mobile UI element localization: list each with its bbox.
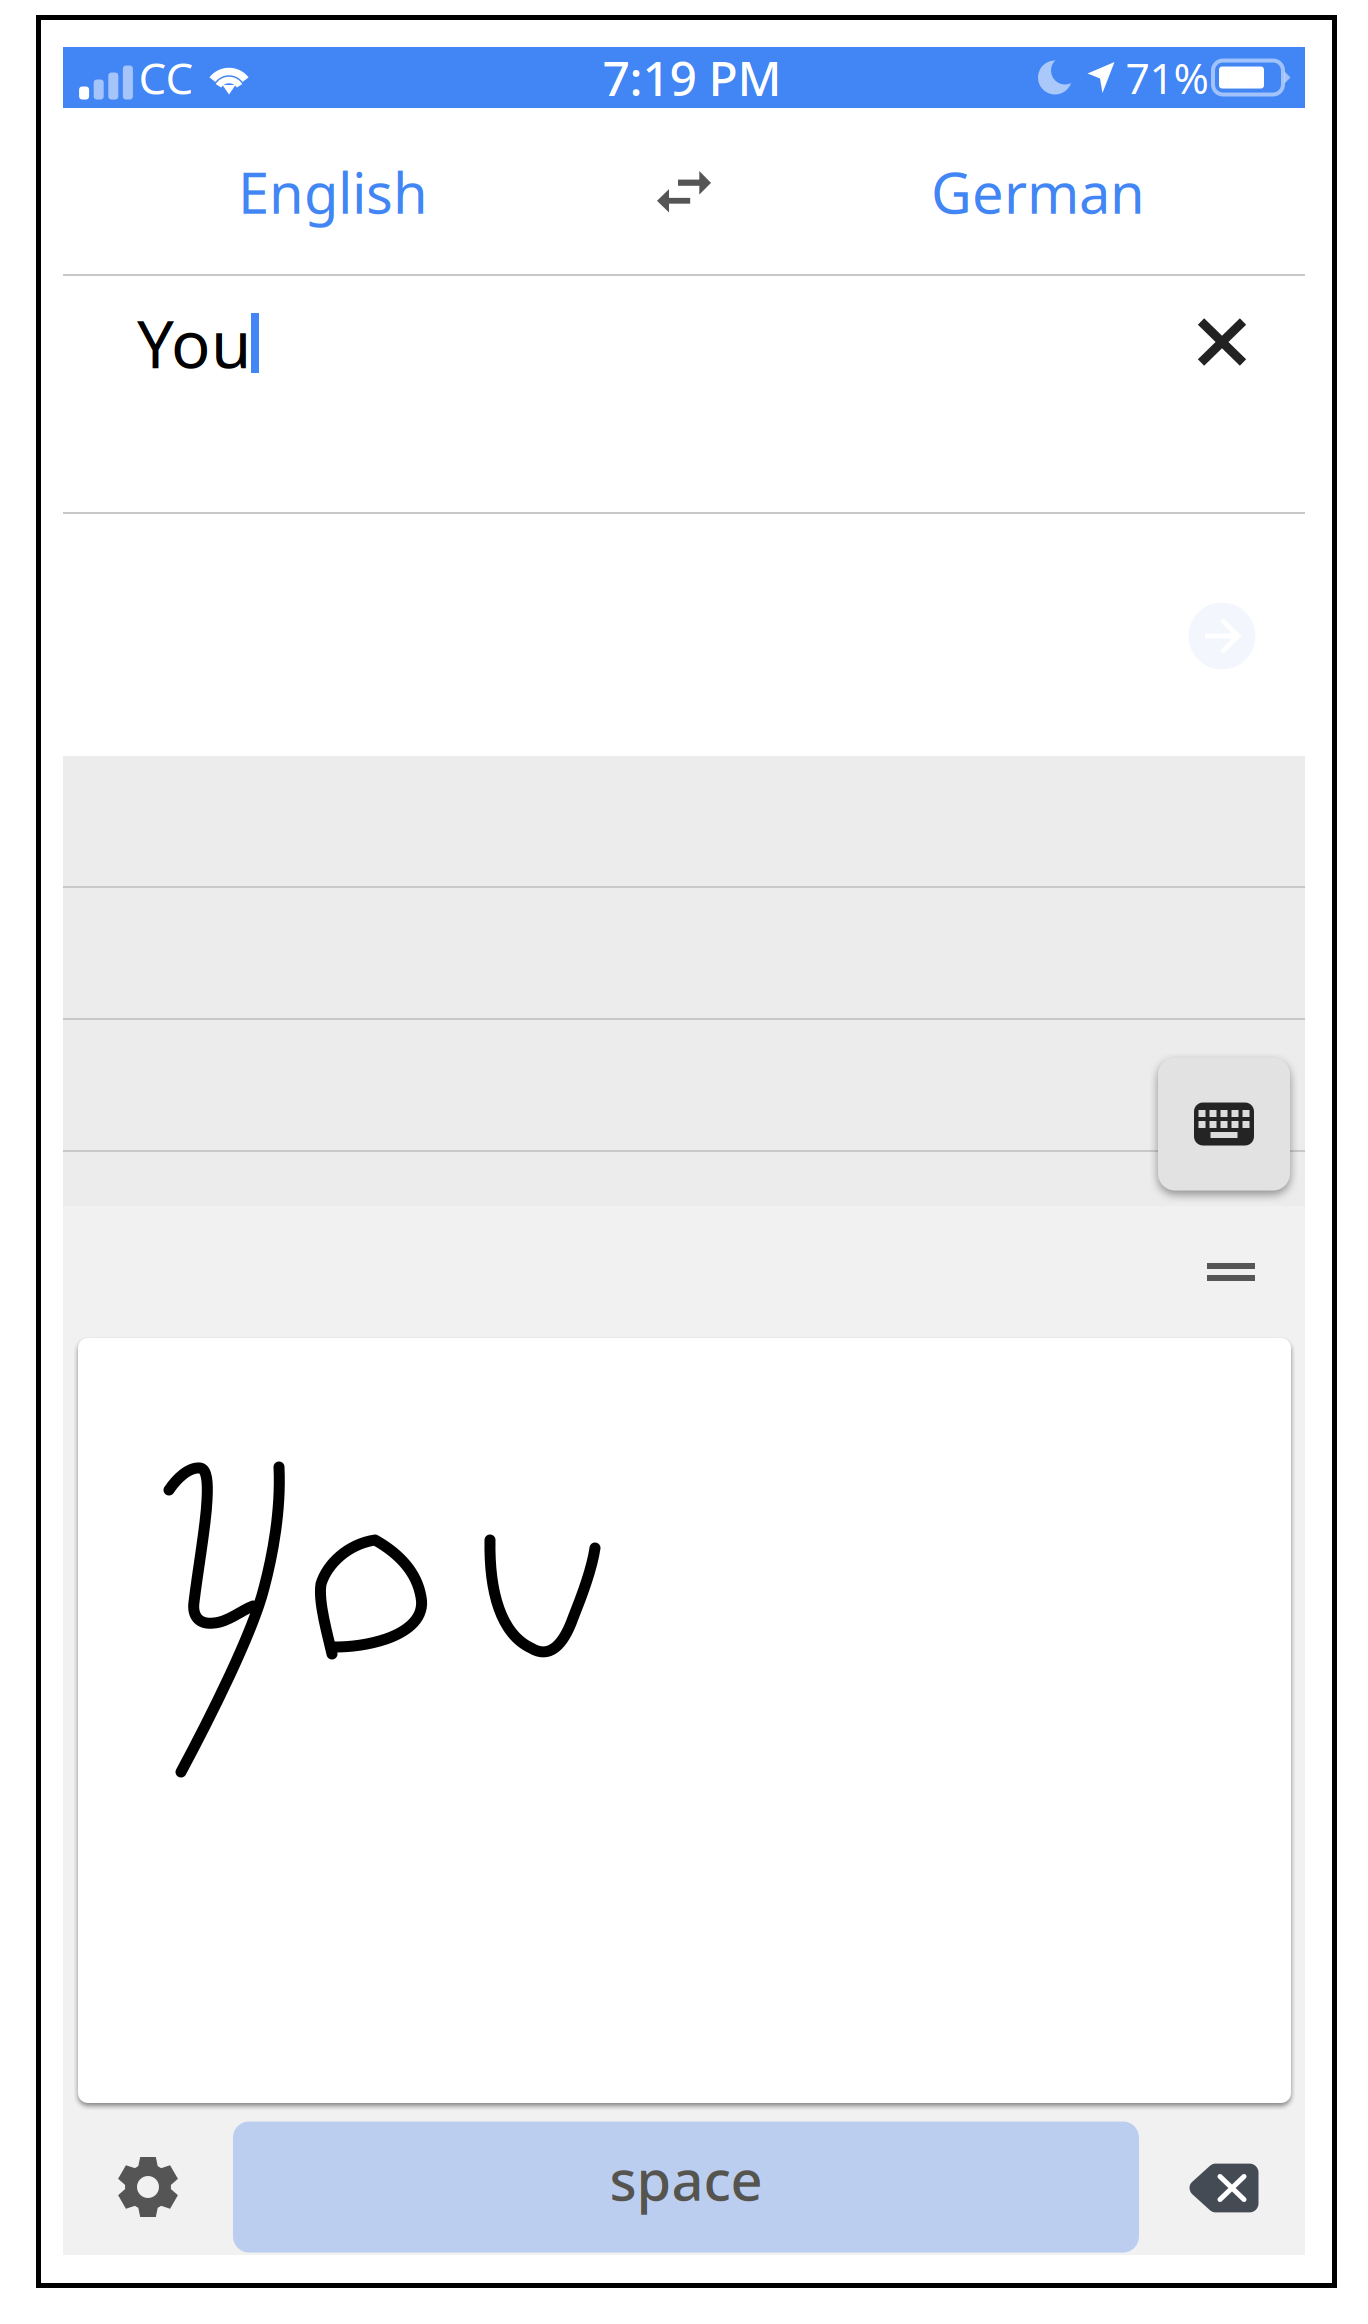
button[interactable]: German [838, 108, 1238, 275]
button[interactable]: Delete [1149, 2121, 1299, 2255]
button[interactable]: Switch keyboard [1158, 1057, 1290, 1190]
button[interactable]: Swap languages [609, 108, 759, 275]
button[interactable]: Clear text [1162, 282, 1282, 402]
staticText: You [137, 300, 251, 386]
staticText: German [931, 155, 1145, 229]
button[interactable]: English [133, 108, 533, 275]
button[interactable]: Settings [73, 2120, 223, 2254]
staticText: CC [138, 48, 193, 107]
button[interactable]: Resize [1186, 1237, 1276, 1307]
staticText: space [609, 2142, 762, 2216]
staticText: 7:19 PM [602, 46, 781, 109]
button[interactable]: space [233, 2121, 1139, 2252]
staticText: 71% [1125, 49, 1208, 106]
staticText: English [238, 155, 428, 229]
button[interactable]: Translate [1167, 581, 1277, 691]
